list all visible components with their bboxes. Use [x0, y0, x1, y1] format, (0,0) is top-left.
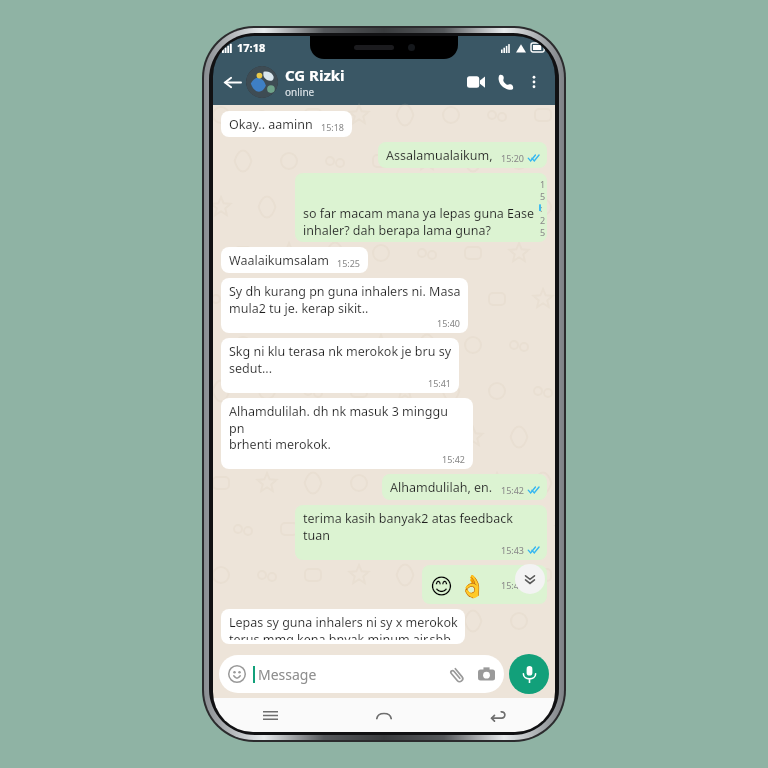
staticText: 15:43 — [501, 579, 525, 591]
button[interactable]: Voice message — [509, 654, 549, 694]
button[interactable]: Video call — [461, 67, 491, 97]
button[interactable]: terima kasih banyak2 atas feedback tuan — [295, 505, 547, 560]
button[interactable]: More options — [521, 69, 547, 95]
staticText: 15:41 — [428, 377, 452, 389]
staticText: 17:18 — [237, 40, 266, 55]
staticText: Lepas sy guna inhalers ni sy x merokok t… — [229, 614, 458, 640]
staticText: Skg ni klu terasa nk merokok je bru sy s… — [229, 343, 452, 376]
staticText: Sy dh kurang pn guna inhalers ni. Masa m… — [229, 283, 461, 316]
button[interactable]: Waalaikumsalam — [221, 247, 368, 273]
button[interactable]: Skg ni klu terasa nk merokok je bru sy s… — [221, 338, 459, 393]
button[interactable]: Okay.. aaminn — [221, 111, 352, 137]
staticText: 😊 👌 — [430, 570, 487, 600]
button[interactable]: so far macam mana ya lepas guna Ease inh… — [295, 173, 547, 242]
button[interactable]: Profile photo — [246, 66, 278, 98]
staticText: Alhamdulilah, en. — [390, 479, 493, 496]
staticText: online — [285, 85, 315, 99]
button[interactable]: Sy dh kurang pn guna inhalers ni. Masa m… — [221, 278, 468, 333]
staticText: Alhamdulilah. dh nk masuk 3 minggu pn br… — [229, 403, 466, 452]
staticText: Okay.. aaminn — [229, 116, 313, 133]
button[interactable]: Voice call — [491, 67, 521, 97]
staticText: so far macam mana ya lepas guna Ease inh… — [303, 205, 535, 238]
button[interactable]: Scroll to bottom — [515, 564, 545, 594]
button[interactable]: Alhamdulilah. dh nk masuk 3 minggu pn br… — [221, 398, 473, 469]
button[interactable]: Home — [327, 698, 441, 732]
button[interactable]: Emoji — [219, 655, 504, 693]
staticText: 15:42 — [442, 453, 466, 465]
staticText: terima kasih banyak2 atas feedback tuan — [303, 510, 540, 543]
staticText: Waalaikumsalam — [229, 252, 329, 269]
staticText: 15:43 — [501, 544, 525, 556]
staticText: 15:18 — [321, 121, 345, 133]
staticText: CG Rizki — [285, 65, 345, 85]
staticText: 15:40 — [437, 317, 461, 329]
other: Attach — [449, 666, 466, 683]
other: Emoji — [228, 665, 246, 683]
button[interactable]: Alhamdulilah, en. — [382, 474, 547, 500]
button[interactable]: 😊 👌 — [422, 565, 547, 604]
other: Camera — [478, 666, 495, 683]
staticText: 15:25 — [337, 257, 361, 269]
button[interactable]: Back — [219, 69, 245, 95]
button[interactable]: Recents — [213, 698, 327, 732]
button[interactable]: CG Rizki — [285, 65, 461, 99]
staticText: 15:42 — [501, 484, 525, 496]
staticText: 15:20 — [501, 152, 525, 164]
button[interactable]: Assalamualaikum, — [378, 142, 547, 168]
staticText: Message — [258, 665, 317, 684]
staticText: Assalamualaikum, — [386, 147, 493, 164]
button[interactable]: Back — [441, 698, 555, 732]
button[interactable]: Lepas sy guna inhalers ni sy x merokok t… — [221, 609, 465, 644]
